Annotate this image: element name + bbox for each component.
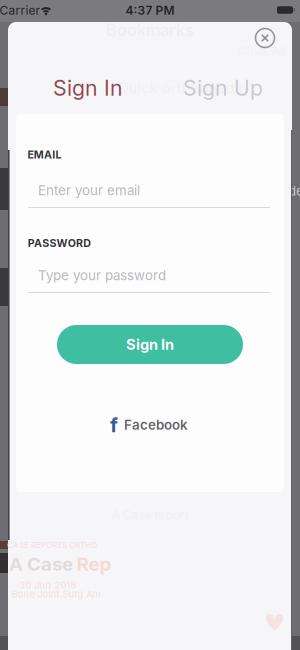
staticText: Facebook — [124, 417, 188, 433]
staticText: 30 Jun 2018 — [19, 579, 76, 590]
staticText: Sign In — [53, 75, 123, 101]
staticText: f — [110, 413, 118, 437]
staticText: PASSWORD — [28, 237, 91, 249]
staticText: Enter your email — [38, 183, 140, 198]
staticText: Rep — [76, 553, 111, 575]
staticText: Carrier — [0, 3, 40, 18]
button[interactable]: Email, text field — [28, 165, 270, 215]
button[interactable]: Password, secure text field — [28, 250, 270, 300]
staticText: 4:37 PM — [125, 3, 174, 18]
button[interactable]: Close — [253, 26, 277, 50]
button[interactable]: f — [102, 412, 198, 438]
button[interactable]: Sign In — [53, 75, 123, 101]
staticText: Bookmarks — [106, 21, 194, 39]
staticText: CASE REPORTS ORTHO — [7, 540, 97, 550]
staticText: de — [288, 183, 300, 199]
staticText: Clear All — [238, 44, 286, 58]
staticText: Sign Up — [183, 75, 263, 101]
staticText: Sign In — [126, 336, 174, 353]
button[interactable]: Sign Up — [183, 75, 263, 101]
staticText: Type your password — [38, 268, 166, 283]
staticText: Quick orthopaedic — [117, 79, 246, 97]
staticText: EMAIL — [28, 148, 61, 161]
staticText: Bone Joint Surg Am — [11, 588, 100, 599]
staticText: A Case — [9, 553, 73, 575]
button[interactable]: Sign In — [57, 325, 243, 364]
